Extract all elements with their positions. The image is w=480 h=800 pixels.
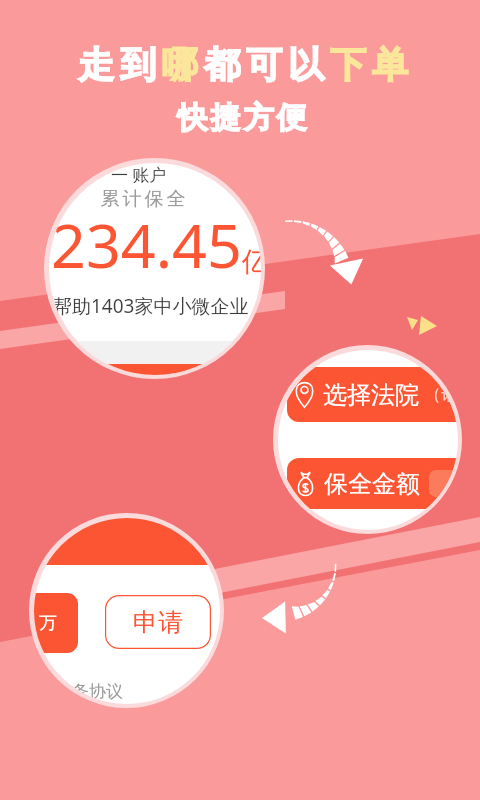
button[interactable]: 申请 [105,595,211,649]
staticText: 帮助1403家中小微企业 [53,293,249,319]
staticText: 234.45 [51,203,242,286]
staticText: 累计保全 [99,187,187,211]
staticText: 保全金额 [324,469,420,499]
staticText: 快捷方便 [176,99,308,137]
staticText: （请 [424,384,458,405]
staticText: 选择法院 [323,380,419,410]
staticText: 一 账户 [111,163,167,186]
button[interactable]: 选择法院 [287,367,458,422]
staticText: 亿 [242,245,261,279]
staticText: 下单 [327,42,411,87]
button[interactable]: 保全金额 [287,458,458,509]
staticText: 万 [39,612,57,635]
staticText: 申请 [133,607,183,638]
staticText: 都可以 [201,42,327,87]
staticText: 务协议 [72,681,123,702]
staticText: 哪 [159,42,201,87]
staticText: 走到 [75,42,159,87]
